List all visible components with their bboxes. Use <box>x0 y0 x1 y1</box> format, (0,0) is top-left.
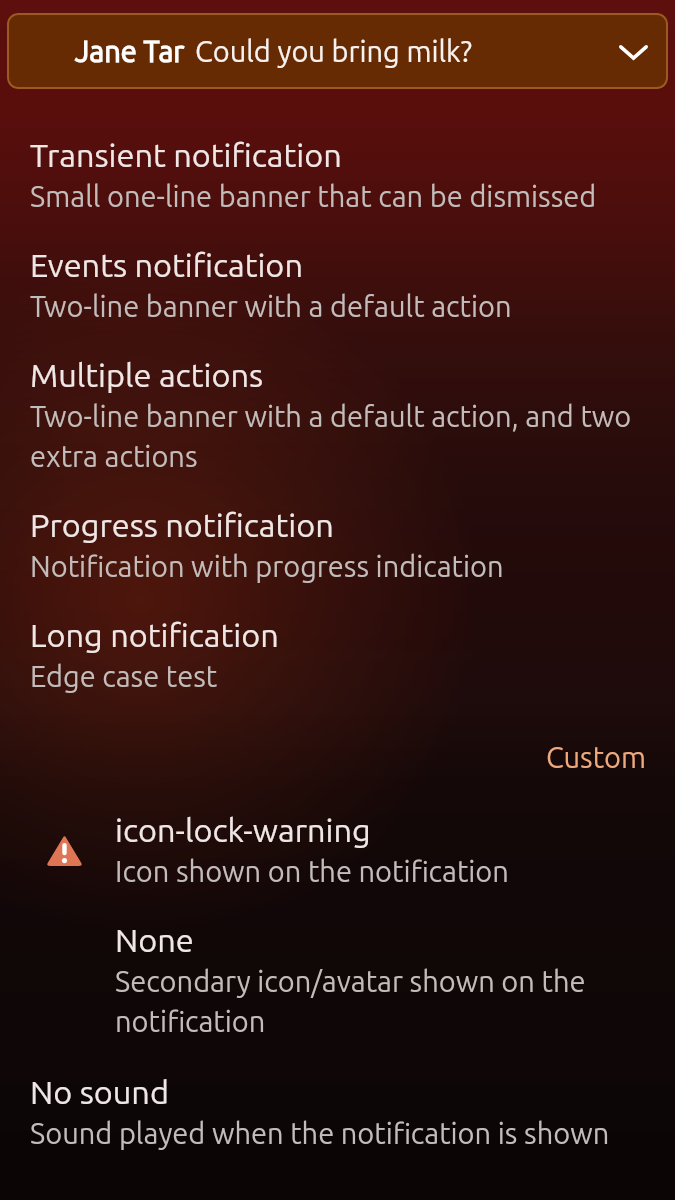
staticText: No sound <box>30 1067 169 1111</box>
button[interactable]: Transient notification <box>0 130 675 214</box>
staticText: Small one-line banner that can be dismis… <box>30 174 597 214</box>
button[interactable]: Custom <box>546 741 675 774</box>
staticText: Could you bring milk? <box>195 35 473 68</box>
button[interactable]: icon-lock-warning <box>0 805 675 889</box>
button[interactable]: None <box>0 915 675 1039</box>
staticText: Two-line banner with a default action <box>30 284 512 324</box>
staticText: Transient notification <box>30 130 342 174</box>
button[interactable]: Jane Tar <box>7 13 668 89</box>
button[interactable]: Events notification <box>0 240 675 324</box>
button[interactable]: Multiple actions <box>0 350 675 474</box>
staticText: Multiple actions <box>30 350 264 394</box>
staticText: Jane Tar <box>75 35 185 68</box>
staticText: Long notification <box>30 610 279 654</box>
staticText: Progress notification <box>30 500 334 544</box>
staticText: Notification with progress indication <box>30 544 504 584</box>
button[interactable]: No sound <box>0 1067 675 1151</box>
staticText: None <box>115 915 194 959</box>
staticText: Two-line banner with a default action, a… <box>30 394 645 474</box>
other: Expand <box>607 27 655 75</box>
staticText: Events notification <box>30 240 303 284</box>
staticText: Edge case test <box>30 654 218 694</box>
staticText: Sound played when the notification is sh… <box>30 1111 610 1151</box>
staticText: Secondary icon/avatar shown on the notif… <box>115 959 645 1039</box>
button[interactable]: Long notification <box>0 610 675 694</box>
staticText: icon-lock-warning <box>115 805 371 849</box>
staticText: Icon shown on the notification <box>115 849 509 889</box>
button[interactable]: Progress notification <box>0 500 675 584</box>
staticText: Custom <box>546 741 646 774</box>
